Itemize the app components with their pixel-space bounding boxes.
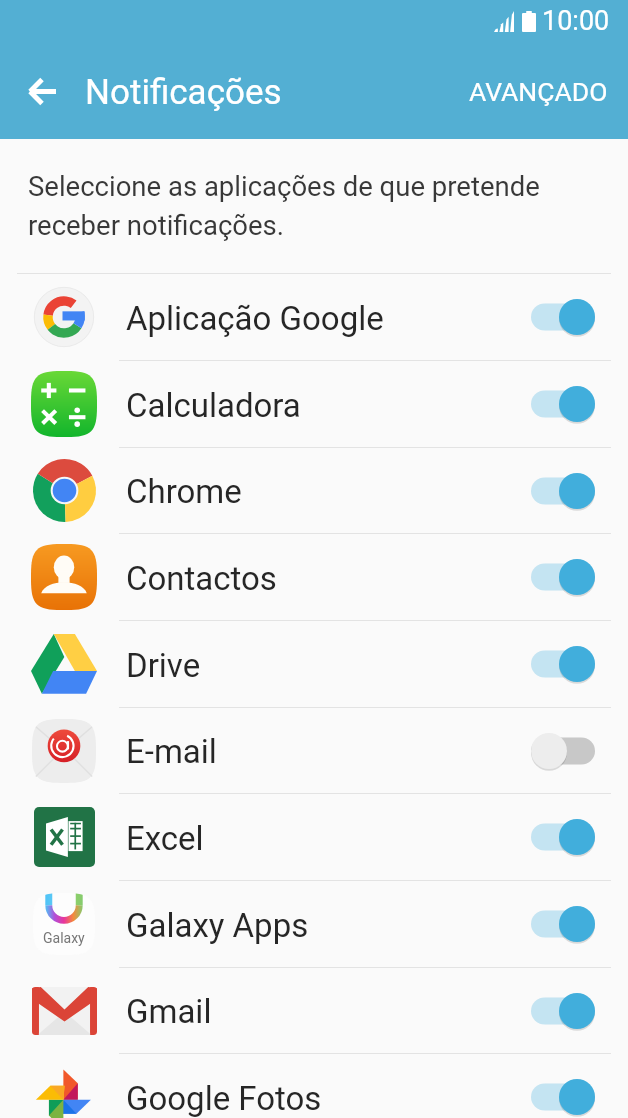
button[interactable]: Contactos bbox=[0, 534, 628, 620]
staticText: Seleccione as aplicações de que pretende… bbox=[28, 170, 586, 242]
staticText: Notificações bbox=[85, 72, 282, 113]
staticText: Calculadora bbox=[126, 386, 531, 425]
button[interactable]: Gmail bbox=[0, 968, 628, 1053]
button[interactable]: Drive bbox=[0, 621, 628, 707]
button[interactable]: Calculadora bbox=[0, 361, 628, 447]
button[interactable]: Galaxy bbox=[0, 881, 628, 967]
staticText: AVANÇADO bbox=[469, 76, 608, 107]
staticText: Drive bbox=[126, 646, 531, 685]
staticText: Chrome bbox=[126, 472, 531, 511]
staticText: Contactos bbox=[126, 559, 531, 598]
button[interactable]: Google Fotos bbox=[0, 1054, 628, 1118]
staticText: E-mail bbox=[126, 732, 531, 771]
staticText: Gmail bbox=[126, 992, 531, 1031]
button[interactable]: Back bbox=[14, 63, 70, 119]
button[interactable]: AVANÇADO bbox=[449, 68, 628, 127]
staticText: Excel bbox=[126, 819, 531, 858]
staticText: Galaxy bbox=[43, 930, 85, 946]
button[interactable]: Excel bbox=[0, 794, 628, 880]
button[interactable]: Chrome bbox=[0, 448, 628, 533]
staticText: Galaxy Apps bbox=[126, 906, 531, 945]
staticText: Aplicação Google bbox=[126, 299, 531, 338]
button[interactable]: Aplicação Google bbox=[0, 274, 628, 360]
staticText: Google Fotos bbox=[126, 1079, 531, 1118]
button[interactable]: E-mail bbox=[0, 708, 628, 793]
staticText: 10:00 bbox=[542, 5, 610, 37]
